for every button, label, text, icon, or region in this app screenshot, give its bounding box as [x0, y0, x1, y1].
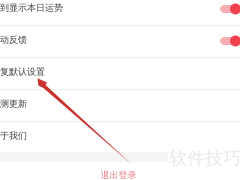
- button[interactable]: 动反馈: [0, 26, 240, 57]
- staticText: 退出登录: [100, 169, 136, 180]
- button[interactable]: Toggle: [220, 3, 240, 14]
- button[interactable]: 复默认设置: [0, 58, 240, 89]
- staticText: 测更新: [0, 98, 27, 109]
- button[interactable]: 于我们: [0, 122, 240, 153]
- button[interactable]: 到显示本日运势: [0, 0, 240, 25]
- button[interactable]: Toggle: [220, 35, 240, 46]
- staticText: 到显示本日运势: [0, 2, 63, 13]
- staticText: 动反馈: [0, 34, 27, 45]
- button[interactable]: 退出登录: [0, 166, 237, 180]
- staticText: 复默认设置: [0, 66, 45, 77]
- staticText: 软件技巧: [169, 147, 240, 169]
- staticText: 于我们: [0, 130, 27, 141]
- button[interactable]: 测更新: [0, 90, 240, 121]
